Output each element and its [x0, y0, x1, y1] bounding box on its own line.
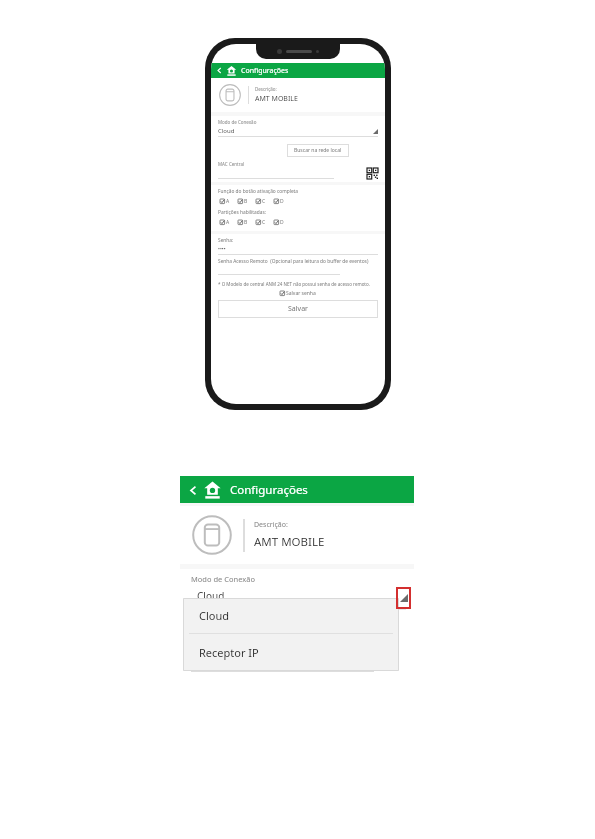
staticText: ••••	[218, 246, 226, 253]
staticText: Descrição:	[255, 86, 277, 92]
staticText: A	[226, 198, 230, 205]
button[interactable]: B	[238, 198, 248, 205]
button[interactable]: Salvar senha	[218, 290, 378, 297]
staticText: MAC Central	[218, 161, 245, 167]
staticText: Buscar na rede local	[294, 147, 342, 154]
staticText: Cloud	[197, 589, 225, 603]
staticText: D	[280, 198, 284, 205]
staticText: B	[244, 198, 248, 205]
staticText: MAC Central	[191, 640, 235, 650]
button[interactable]: Cloud	[183, 598, 399, 633]
button[interactable]: Buscar na rede local	[287, 144, 349, 157]
button[interactable]: D	[274, 219, 284, 226]
staticText: Salvar senha	[286, 290, 316, 297]
staticText: C	[262, 219, 266, 226]
button[interactable]: Back	[215, 66, 224, 75]
button[interactable]: Back	[186, 483, 200, 497]
button[interactable]: Salvar	[218, 300, 378, 318]
staticText: C	[262, 198, 266, 205]
staticText: Senha:	[218, 237, 234, 244]
staticText: Modo de Conexão	[191, 574, 255, 584]
button[interactable]: A	[220, 198, 230, 205]
button[interactable]: D	[274, 198, 284, 205]
button[interactable]: Cloud	[191, 589, 406, 603]
button[interactable]: Open connection mode dropdown	[396, 587, 411, 609]
staticText: AMT MOBILE	[255, 94, 298, 104]
staticText: Receptor IP	[199, 645, 259, 660]
button[interactable]: Receptor IP	[183, 634, 399, 671]
button[interactable]: A	[220, 219, 230, 226]
staticText: Cloud	[199, 608, 230, 623]
staticText: Cloud	[218, 127, 235, 135]
staticText: Função do botão ativação completa	[218, 188, 299, 195]
button[interactable]: C	[256, 219, 266, 226]
staticText: Modo de Conexão	[218, 119, 257, 125]
staticText: Configurações	[230, 482, 308, 498]
button[interactable]: Scan QR code	[367, 168, 378, 179]
staticText: D	[280, 219, 284, 226]
staticText: Senha Acesso Remoto (Opcional para leitu…	[218, 258, 369, 265]
staticText: Salvar	[288, 304, 308, 314]
staticText: AMT MOBILE	[254, 534, 325, 550]
staticText: Configurações	[241, 66, 289, 76]
button[interactable]: Cloud	[218, 127, 378, 135]
staticText: A	[226, 219, 230, 226]
staticText: Partições habilitadas:	[218, 209, 266, 216]
button[interactable]: C	[256, 198, 266, 205]
staticText: Descrição:	[254, 520, 288, 530]
staticText: * O Modelo de central ANM 24 NET não pos…	[218, 281, 370, 287]
button[interactable]: B	[238, 219, 248, 226]
staticText: B	[244, 219, 248, 226]
